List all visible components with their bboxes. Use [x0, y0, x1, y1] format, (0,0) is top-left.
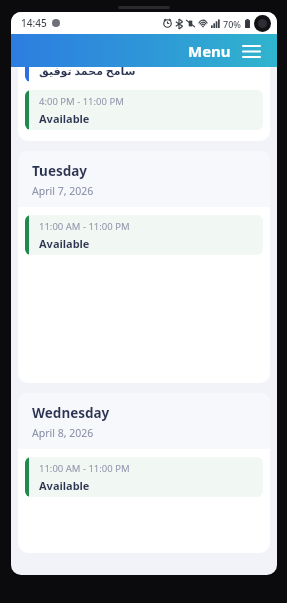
button[interactable]: 4:00 PM - 11:00 PM: [25, 90, 263, 130]
staticText: Available: [39, 111, 90, 126]
staticText: Available: [39, 478, 90, 493]
staticText: 11:00 AM - 11:00 PM: [39, 220, 130, 233]
staticText: Menu: [188, 41, 231, 61]
staticText: 11:00 AM - 11:00 PM: [39, 462, 130, 475]
staticText: 70%: [223, 18, 241, 30]
staticText: April 7, 2026: [32, 184, 94, 198]
staticText: سامح محمد توفيق: [39, 63, 136, 78]
button[interactable]: Tuesday: [18, 151, 270, 383]
button[interactable]: Wednesday: [18, 393, 270, 553]
staticText: Wednesday: [32, 404, 110, 422]
button[interactable]: 3:00 PM - 4:00 PM: [25, 42, 263, 82]
button[interactable]: 11:00 AM - 11:00 PM: [25, 457, 263, 497]
staticText: 3:00 PM - 4:00 PM: [39, 47, 119, 60]
staticText: 14:45: [21, 16, 47, 30]
button[interactable]: Menu: [184, 37, 265, 65]
staticText: April 8, 2026: [32, 426, 94, 440]
staticText: Tuesday: [32, 162, 88, 180]
staticText: 4:00 PM - 11:00 PM: [39, 95, 124, 108]
button[interactable]: 11:00 AM - 11:00 PM: [25, 215, 263, 255]
staticText: Available: [39, 236, 90, 251]
other: Open menu: [241, 41, 261, 61]
